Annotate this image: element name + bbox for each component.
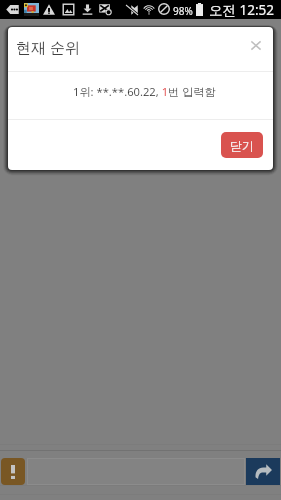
staticText: 98% [173, 4, 193, 18]
staticText: 현재 순위 [16, 37, 80, 57]
button[interactable]: Close [245, 34, 267, 56]
button[interactable]: Send [246, 458, 280, 485]
button[interactable]: Warning [1, 458, 25, 485]
button[interactable]: 닫기 [221, 132, 263, 158]
staticText: 닫기 [230, 138, 254, 153]
staticText: 오전 12:52 [209, 1, 275, 19]
staticText: 1위: **.**.60.22, 1번 입력함 [73, 84, 216, 99]
